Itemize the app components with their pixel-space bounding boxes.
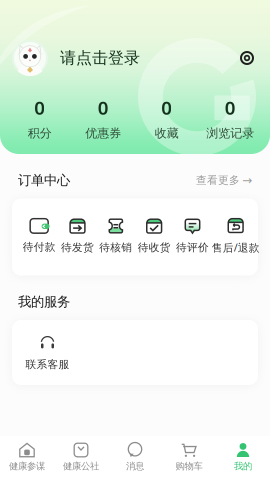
staticText: 消息 <box>126 460 144 472</box>
button[interactable]: 0 <box>135 95 198 140</box>
staticText: 售后/退款 <box>212 240 260 255</box>
button[interactable]: 消息 <box>108 442 162 472</box>
button[interactable]: 请点击登录 <box>60 48 140 68</box>
staticText: 我的服务 <box>18 293 70 310</box>
button[interactable]: Settings <box>236 47 258 69</box>
staticText: 0 <box>161 95 172 120</box>
staticText: 积分 <box>28 126 52 140</box>
staticText: 浏览记录 <box>206 126 254 140</box>
button[interactable]: 待付款 <box>20 217 58 253</box>
button[interactable]: 0 <box>71 95 135 140</box>
button[interactable]: 0 <box>8 95 71 140</box>
staticText: 待评价 <box>176 241 209 254</box>
staticText: 我的 <box>234 460 252 472</box>
staticText: 0 <box>34 95 45 120</box>
staticText: 0 <box>225 95 236 120</box>
staticText: 请点击登录 <box>60 48 140 68</box>
staticText: 健康公社 <box>63 460 99 472</box>
button[interactable]: 我的 <box>216 442 270 472</box>
button[interactable]: 健康公社 <box>54 442 108 472</box>
staticText: 待付款 <box>23 240 56 253</box>
staticText: 待核销 <box>99 241 132 254</box>
staticText: 0 <box>98 95 109 120</box>
staticText: → <box>242 173 252 187</box>
button[interactable]: 待核销 <box>97 217 135 254</box>
button[interactable]: 0 <box>198 95 262 140</box>
staticText: 购物车 <box>175 460 202 472</box>
button[interactable]: 查看更多 <box>196 173 252 187</box>
staticText: 待收货 <box>138 241 171 254</box>
staticText: 联系客服 <box>25 358 69 371</box>
staticText: 健康参谋 <box>9 460 45 472</box>
staticText: 收藏 <box>155 126 179 140</box>
button[interactable]: 待收货 <box>135 217 173 254</box>
button[interactable]: 健康参谋 <box>0 442 54 472</box>
button[interactable]: 待发货 <box>58 217 97 254</box>
staticText: 订单中心 <box>18 172 70 188</box>
staticText: 优惠券 <box>85 126 121 140</box>
button[interactable]: 售后/退款 <box>212 216 250 255</box>
staticText: 待发货 <box>61 241 94 254</box>
staticText: 查看更多 <box>196 174 240 187</box>
button[interactable]: 联系客服 <box>25 334 70 371</box>
button[interactable]: 待评价 <box>173 217 212 254</box>
button[interactable]: 购物车 <box>162 442 216 472</box>
